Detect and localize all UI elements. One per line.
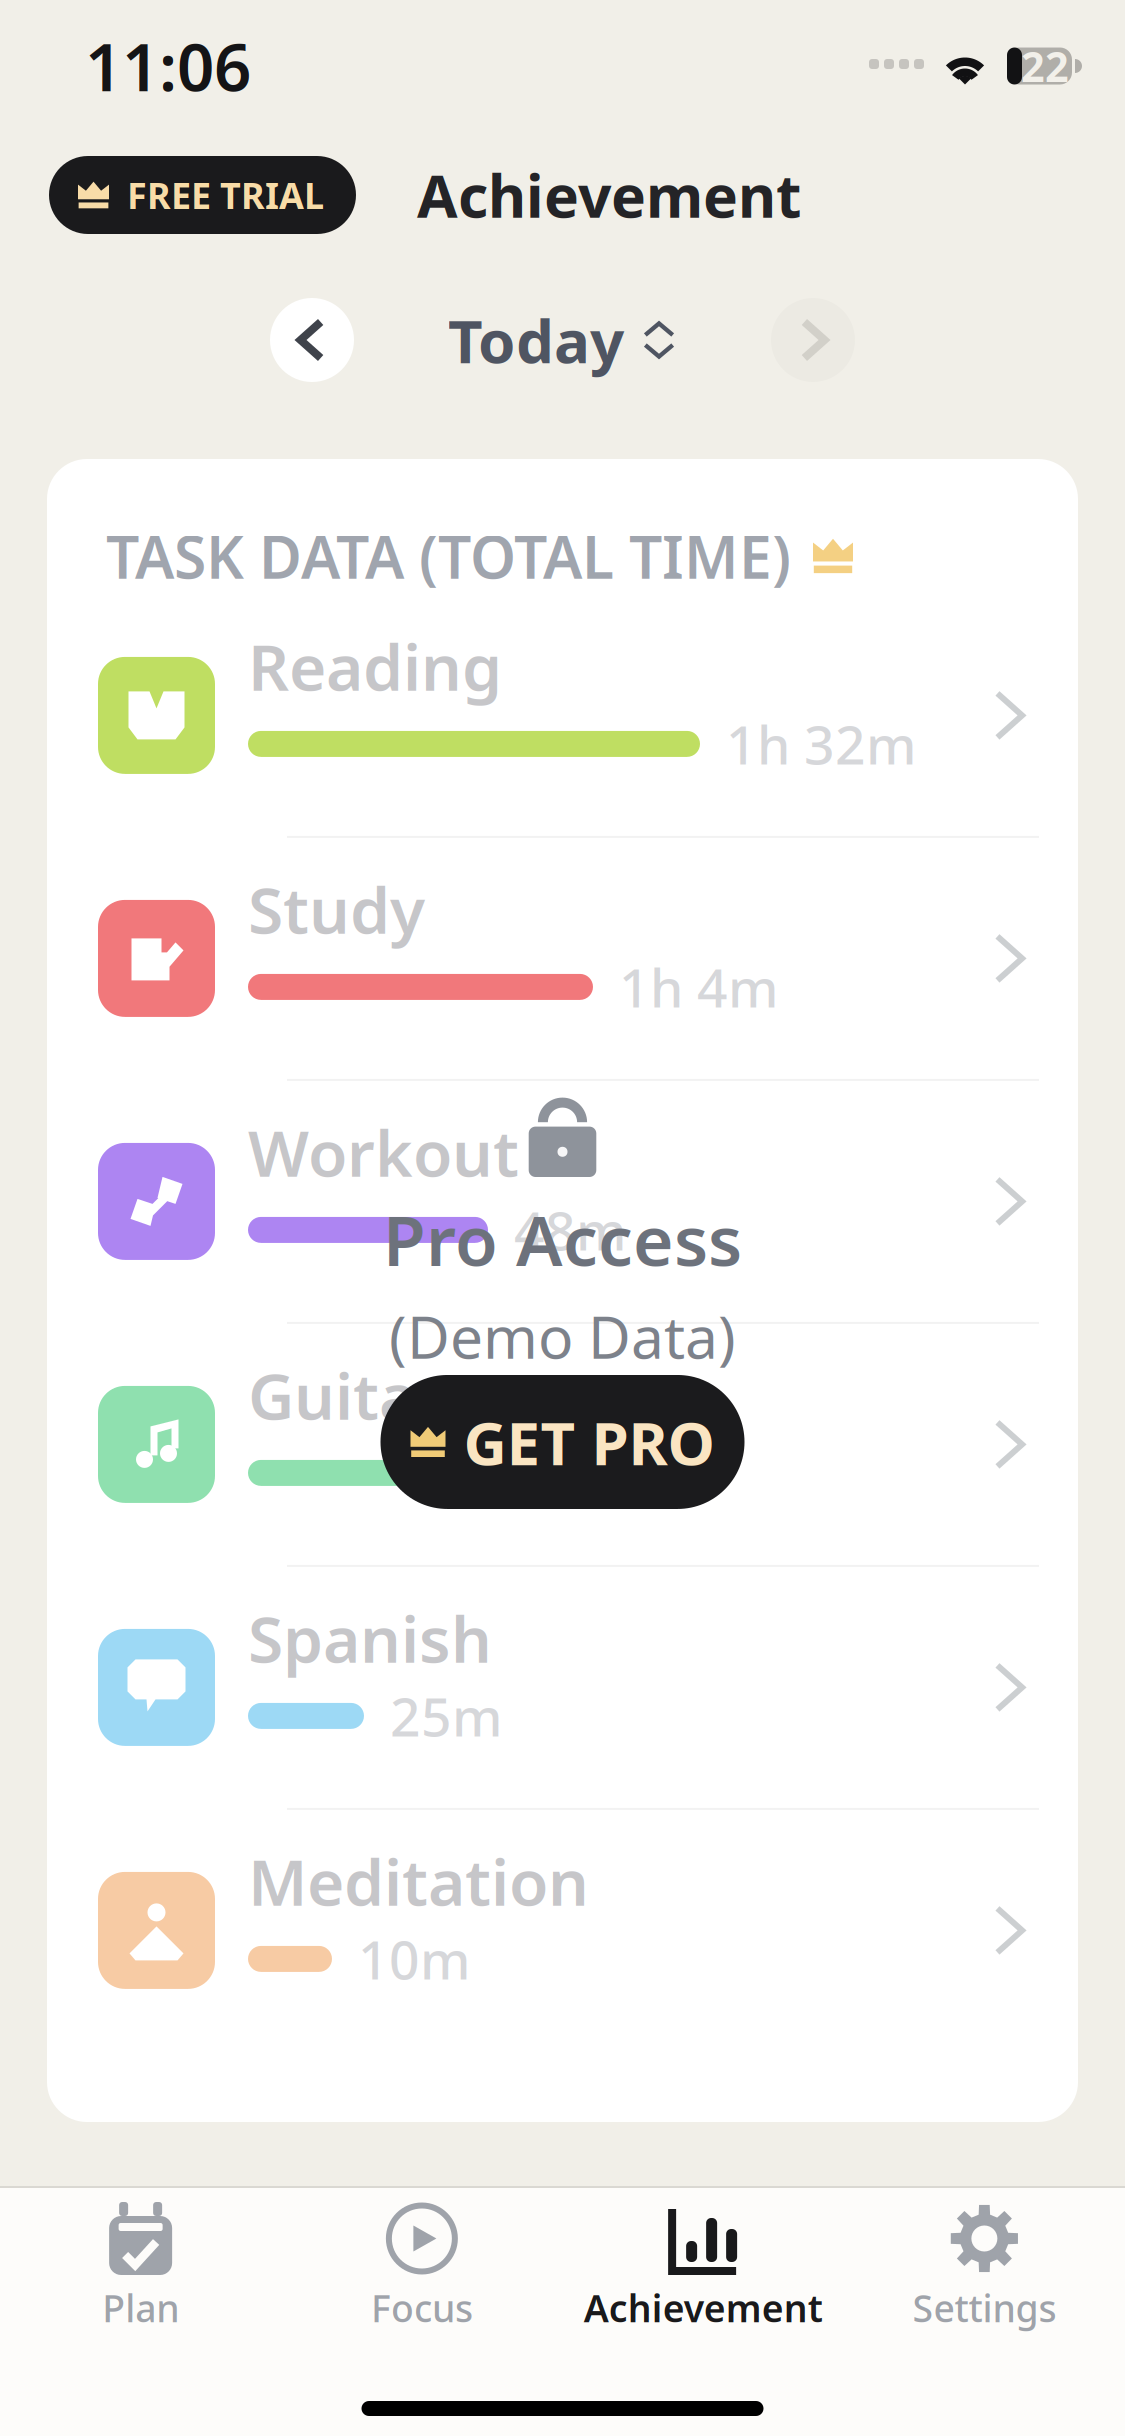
button[interactable]: Previous day — [270, 298, 354, 382]
button[interactable]: Spanish — [47, 1567, 1078, 1808]
staticText: Today — [448, 300, 624, 380]
button[interactable]: Study — [47, 838, 1078, 1079]
staticText: Reading — [248, 623, 502, 708]
staticText: 10m — [358, 1923, 471, 1994]
button[interactable]: Plan — [0, 2202, 281, 2333]
button[interactable]: Today — [448, 300, 677, 380]
button[interactable]: Next day — [771, 298, 855, 382]
staticText: 11:06 — [85, 23, 251, 109]
button[interactable]: GET PRO — [380, 1375, 744, 1509]
staticText: Focus — [371, 2283, 473, 2333]
staticText: Meditation — [248, 1838, 589, 1923]
button[interactable]: Reading — [47, 595, 1078, 836]
staticText: (Demo Data) — [389, 1297, 736, 1375]
staticText: Pro Access — [383, 1193, 742, 1285]
button[interactable]: Guitar — [47, 1324, 1078, 1565]
button[interactable]: Settings — [844, 2202, 1125, 2333]
staticText: Guitar — [248, 1352, 444, 1437]
staticText: 36m — [450, 1437, 563, 1508]
button[interactable]: Meditation — [47, 1810, 1078, 2051]
staticText: FREE TRIAL — [127, 171, 324, 219]
staticText: Workout — [248, 1109, 519, 1194]
staticText: Achievement — [417, 156, 801, 234]
staticText: 1h 4m — [619, 951, 779, 1022]
staticText: 48m — [514, 1194, 627, 1265]
staticText: GET PRO — [463, 1402, 714, 1482]
button[interactable]: Focus — [281, 2202, 562, 2333]
button[interactable]: Workout — [47, 1081, 1078, 1322]
staticText: TASK DATA (TOTAL TIME) — [106, 517, 791, 595]
button[interactable]: Achievement — [562, 2202, 844, 2333]
staticText: 22 — [1021, 39, 1069, 93]
staticText: Spanish — [248, 1595, 492, 1680]
staticText: Achievement — [584, 2283, 823, 2333]
staticText: Study — [248, 866, 425, 951]
staticText: 25m — [390, 1680, 503, 1751]
staticText: Settings — [912, 2283, 1056, 2333]
button[interactable]: FREE TRIAL — [49, 156, 356, 234]
staticText: Plan — [102, 2283, 179, 2333]
staticText: 1h 32m — [726, 708, 917, 779]
